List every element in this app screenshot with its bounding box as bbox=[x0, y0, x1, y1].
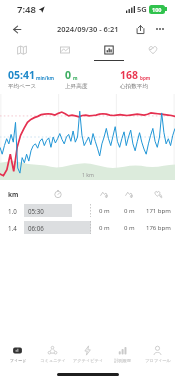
staticText: 上昇高度 bbox=[65, 83, 88, 90]
staticText: 168 bbox=[120, 68, 139, 82]
staticText: m bbox=[73, 75, 78, 81]
staticText: 2024/09/30 - 6:21 bbox=[57, 24, 119, 34]
staticText: 176 bpm bbox=[146, 224, 171, 232]
button[interactable]: Share bbox=[130, 19, 150, 39]
staticText: 7:48 bbox=[17, 3, 36, 16]
staticText: 100 bbox=[152, 6, 162, 13]
button[interactable]: コミュニティ bbox=[35, 340, 70, 368]
staticText: km bbox=[8, 190, 24, 199]
button[interactable]: 1.4 bbox=[0, 219, 175, 236]
staticText: 平均ペース bbox=[8, 83, 37, 90]
button[interactable]: Map bbox=[0, 39, 43, 61]
staticText: bpm bbox=[140, 75, 151, 81]
button[interactable]: フィード bbox=[0, 340, 35, 368]
staticText: 05:41 bbox=[8, 68, 35, 82]
button[interactable]: Back bbox=[6, 19, 26, 39]
staticText: 05:30 bbox=[28, 207, 44, 215]
button[interactable]: 計測履歴 bbox=[105, 340, 140, 368]
staticText: 心拍数平均 bbox=[120, 83, 148, 90]
button[interactable]: アクティビティ bbox=[70, 340, 105, 368]
staticText: 1.4 bbox=[8, 224, 24, 232]
staticText: 0 bbox=[65, 68, 72, 82]
button[interactable]: Statistics bbox=[87, 39, 131, 61]
button[interactable]: プロフィール bbox=[140, 340, 175, 368]
staticText: フィード bbox=[9, 358, 27, 363]
staticText: min/km bbox=[36, 75, 55, 81]
button[interactable]: Heart rate bbox=[131, 39, 175, 61]
staticText: 1 km bbox=[82, 171, 94, 178]
staticText: 0 m bbox=[124, 224, 135, 232]
staticText: 5G bbox=[137, 4, 147, 14]
staticText: 計測履歴 bbox=[114, 358, 131, 363]
staticText: 0 m bbox=[124, 207, 135, 215]
staticText: アクティビティ bbox=[73, 358, 103, 363]
button[interactable]: 1.0 bbox=[0, 202, 175, 219]
staticText: 0 m bbox=[99, 224, 110, 232]
staticText: プロフィール bbox=[145, 358, 171, 363]
staticText: 06:06 bbox=[28, 224, 44, 232]
staticText: 171 bpm bbox=[146, 207, 171, 215]
button[interactable]: More options bbox=[150, 19, 170, 39]
staticText: コミュニティ bbox=[40, 358, 66, 363]
staticText: 0 m bbox=[99, 207, 110, 215]
staticText: 1.0 bbox=[8, 207, 24, 215]
button[interactable]: Graph bbox=[43, 39, 87, 61]
